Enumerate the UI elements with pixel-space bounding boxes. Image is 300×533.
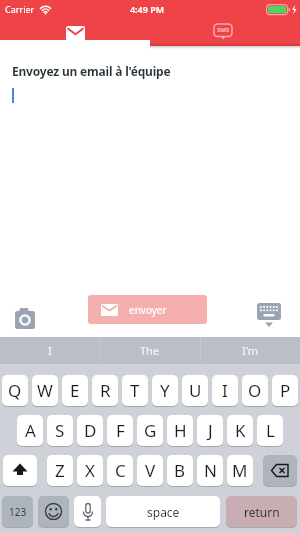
staticText: I	[48, 343, 52, 358]
staticText: Q	[8, 379, 22, 402]
button[interactable]	[8, 303, 42, 333]
staticText: envoyer	[129, 303, 167, 317]
staticText: U	[189, 379, 202, 402]
button[interactable]: D	[77, 415, 103, 446]
staticText: M	[232, 459, 248, 482]
button[interactable]: I	[212, 375, 238, 406]
staticText: X	[85, 459, 95, 482]
button[interactable]: S	[47, 415, 73, 446]
staticText: R	[100, 379, 111, 402]
staticText: space	[147, 504, 180, 520]
button[interactable]: E	[62, 375, 88, 406]
staticText: J	[208, 419, 213, 442]
button[interactable]: B	[167, 455, 193, 486]
button[interactable]: A	[17, 415, 43, 446]
button[interactable]: I'm	[200, 337, 300, 364]
staticText: 4:49 PM	[0, 3, 297, 15]
button[interactable]	[263, 455, 297, 486]
button[interactable]	[74, 496, 101, 527]
button[interactable]: 123	[2, 496, 33, 527]
button[interactable]: V	[137, 455, 163, 486]
staticText: E	[70, 379, 80, 402]
button[interactable]: X	[77, 455, 103, 486]
button[interactable]: The	[100, 337, 200, 364]
button[interactable]: N	[197, 455, 223, 486]
staticText: Carrier	[5, 3, 35, 15]
button[interactable]: J	[197, 415, 223, 446]
staticText: D	[84, 419, 97, 442]
staticText: T	[130, 379, 140, 402]
button[interactable]	[251, 298, 287, 332]
button[interactable]: envoyer	[88, 295, 207, 324]
staticText: O	[248, 379, 262, 402]
button[interactable]: Y	[152, 375, 178, 406]
button[interactable]: space	[106, 496, 220, 527]
staticText: L	[266, 419, 275, 442]
staticText: W	[37, 379, 53, 402]
button[interactable]: K	[227, 415, 253, 446]
staticText: 123	[9, 505, 27, 519]
button[interactable]: return	[226, 496, 297, 527]
button[interactable]: G	[137, 415, 163, 446]
staticText: P	[280, 379, 291, 402]
button[interactable]: Z	[47, 455, 73, 486]
staticText: The	[140, 343, 160, 358]
button[interactable]: I	[0, 337, 100, 364]
staticText: return	[244, 504, 280, 520]
staticText: Z	[55, 459, 65, 482]
staticText: S	[55, 419, 65, 442]
button[interactable]: L	[257, 415, 283, 446]
staticText: Envoyez un email à l'équipe	[12, 63, 171, 79]
button[interactable]: H	[167, 415, 193, 446]
button[interactable]	[38, 496, 69, 527]
staticText: H	[174, 419, 187, 442]
button[interactable]: W	[32, 375, 58, 406]
staticText: C	[115, 459, 126, 482]
button[interactable]: F	[107, 415, 133, 446]
button[interactable]: U	[182, 375, 208, 406]
button[interactable]: M	[227, 455, 253, 486]
button[interactable]: Q	[2, 375, 28, 406]
staticText: N	[204, 459, 217, 482]
staticText: SMS	[217, 26, 230, 34]
staticText: F	[116, 419, 125, 442]
staticText: I	[222, 379, 228, 402]
button[interactable]: O	[242, 375, 268, 406]
staticText: I'm	[242, 343, 259, 358]
staticText: A	[25, 419, 36, 442]
button[interactable]: R	[92, 375, 118, 406]
button[interactable]	[3, 455, 37, 486]
staticText: G	[144, 419, 157, 442]
button[interactable]: P	[272, 375, 298, 406]
staticText: B	[174, 459, 186, 482]
button[interactable]: SMS	[150, 20, 300, 46]
staticText: K	[235, 419, 246, 442]
button[interactable]: T	[122, 375, 148, 406]
staticText: V	[145, 459, 156, 482]
button[interactable]: C	[107, 455, 133, 486]
staticText: Y	[160, 379, 170, 402]
button[interactable]	[0, 20, 150, 46]
